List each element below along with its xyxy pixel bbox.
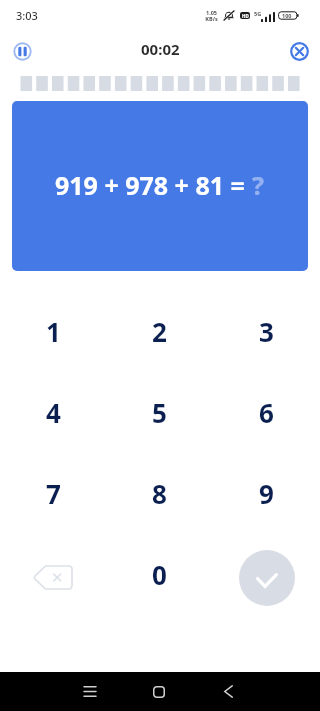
button[interactable]: 3 — [213, 291, 320, 372]
staticText: 3:03 — [16, 8, 38, 23]
button[interactable]: Close — [286, 38, 312, 64]
button[interactable]: Back — [208, 672, 248, 711]
button[interactable]: 8 — [106, 453, 213, 534]
staticText: 3 — [259, 314, 274, 349]
staticText: 100 — [282, 12, 292, 19]
staticText: 1.05 KB/s — [205, 9, 218, 22]
staticText: 00:02 — [141, 39, 180, 59]
button[interactable]: Submit — [239, 550, 295, 606]
staticText: 6 — [259, 395, 274, 430]
button[interactable]: Pause — [9, 38, 35, 64]
staticText: 5 — [152, 395, 167, 430]
staticText: 4 — [46, 395, 61, 430]
button[interactable]: 0 — [106, 534, 213, 615]
staticText: 9 — [259, 476, 274, 511]
button[interactable]: 5 — [106, 372, 213, 453]
staticText: ? — [252, 168, 264, 202]
staticText: 2 — [152, 314, 167, 349]
button[interactable]: 4 — [0, 372, 106, 453]
button[interactable]: 7 — [0, 453, 106, 534]
staticText: HD — [242, 13, 249, 19]
button[interactable]: 1 — [0, 291, 106, 372]
staticText: 1 — [46, 314, 61, 349]
staticText: 8 — [152, 476, 167, 511]
staticText: 0 — [152, 557, 167, 592]
button[interactable]: Home — [139, 672, 179, 711]
button[interactable]: Recent apps — [70, 672, 110, 711]
button[interactable]: Backspace — [0, 534, 106, 615]
staticText: 5G — [254, 10, 262, 17]
staticText: 7 — [46, 476, 61, 511]
button[interactable]: 2 — [106, 291, 213, 372]
staticText: 919 + 978 + 81 = — [55, 168, 252, 202]
button[interactable]: 9 — [213, 453, 320, 534]
button[interactable]: 919 + 978 + 81 = — [12, 101, 308, 271]
button[interactable]: 6 — [213, 372, 320, 453]
